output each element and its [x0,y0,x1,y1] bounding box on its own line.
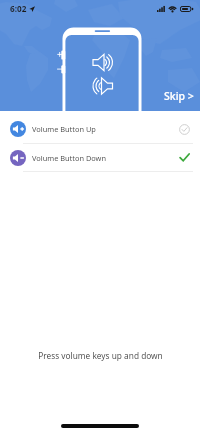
button[interactable]: Skip > [156,83,200,111]
button[interactable]: Volume Button Up [0,111,200,143]
staticText: Press volume keys up and down [38,350,163,361]
button[interactable]: Volume Button Down [0,144,200,171]
other: Completed [179,152,190,163]
other: Pending [179,124,190,135]
staticText: Skip > [164,89,194,103]
staticText: 6:02 [10,3,27,14]
staticText: Volume Button Up [32,124,96,134]
staticText: Volume Button Down [32,153,106,163]
